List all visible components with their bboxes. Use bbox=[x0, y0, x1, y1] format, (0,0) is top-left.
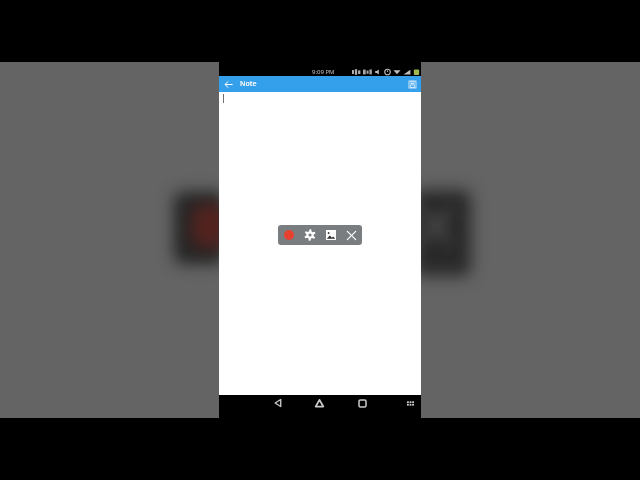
button[interactable]: Save bbox=[403, 76, 421, 92]
staticText: 9:09 PM bbox=[312, 68, 335, 76]
button[interactable]: Recents bbox=[352, 395, 373, 411]
staticText: Note bbox=[240, 79, 257, 89]
button[interactable]: Back bbox=[267, 395, 288, 411]
button[interactable]: Record bbox=[278, 225, 299, 245]
button[interactable]: Close bbox=[341, 225, 362, 245]
button[interactable]: Home bbox=[309, 395, 330, 411]
button[interactable]: Back bbox=[219, 76, 237, 92]
button[interactable]: Settings bbox=[299, 225, 320, 245]
button[interactable]: Apps bbox=[400, 395, 421, 411]
button[interactable]: Screenshot bbox=[320, 225, 341, 245]
